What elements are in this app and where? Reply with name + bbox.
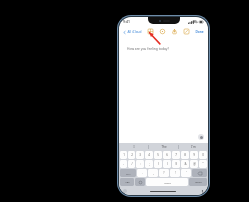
button[interactable]: ABC [120,178,134,186]
staticText: ! [175,171,176,175]
button[interactable]: ( [154,160,162,168]
button[interactable]: Table [147,28,154,35]
button[interactable]: All iCloud [122,29,143,35]
staticText: 7 [175,153,177,157]
staticText: The [161,145,167,149]
button[interactable]: . [137,169,147,177]
staticText: . [142,171,143,175]
staticText: 4 [148,153,150,157]
button[interactable]: " [199,160,207,168]
button[interactable]: 3 [136,151,144,159]
staticText: : [140,162,141,166]
button[interactable]: #+= [120,169,136,177]
staticText: 5 [157,153,159,157]
staticText: - [123,162,124,166]
staticText: ( [158,162,159,166]
staticText: @ [193,162,196,166]
staticText: 1 [123,153,125,157]
staticText: 8 [184,153,186,157]
staticText: I'm [191,145,196,149]
button[interactable]: Share [171,28,178,35]
button[interactable]: 1 [120,151,127,159]
staticText: 9:41 [123,19,130,24]
staticText: Done [195,30,204,34]
button[interactable]: 2 [128,151,135,159]
staticText: " [202,162,204,166]
button[interactable]: Format [159,28,166,35]
button[interactable]: $ [172,160,180,168]
button[interactable]: ) [163,160,171,168]
button[interactable]: Keyboard settings [123,189,127,193]
staticText: ABC [125,181,130,184]
button[interactable]: Backspace [192,169,207,177]
button[interactable]: 7 [172,151,180,159]
staticText: $ [175,162,177,166]
button[interactable]: Dictation [200,189,204,193]
button[interactable]: 6 [163,151,171,159]
button[interactable]: ? [159,169,169,177]
button[interactable]: Done [194,29,205,35]
button[interactable]: & [181,160,189,168]
staticText: 0 [202,153,204,157]
button[interactable]: I [119,143,148,150]
staticText: , [153,171,154,175]
button[interactable]: 0 [199,151,207,159]
staticText: 9 [193,153,195,157]
button[interactable]: : [136,160,144,168]
button[interactable]: The [149,143,178,150]
button[interactable]: 9 [190,151,198,159]
staticText: space [164,181,171,184]
button[interactable]: I'm [179,143,208,150]
staticText: / [131,162,133,166]
button[interactable]: ; [145,160,153,168]
button[interactable]: , [148,169,158,177]
staticText: ; [149,162,150,166]
staticText: I [133,145,135,149]
staticText: #+= [126,172,131,175]
button[interactable]: ' [181,169,191,177]
button[interactable]: More options [198,134,204,140]
staticText: return [195,181,202,184]
button[interactable]: / [128,160,135,168]
button[interactable]: - [120,160,127,168]
staticText: ) [167,162,168,166]
staticText: & [184,162,187,166]
button[interactable]: Compose [183,28,190,35]
button[interactable]: @ [190,160,198,168]
staticText: 2 [131,153,133,157]
staticText: 3 [139,153,141,157]
staticText: ? [163,171,165,175]
button[interactable]: Emoji [135,178,145,186]
staticText: 6 [166,153,168,157]
button[interactable]: 5 [154,151,162,159]
button[interactable]: ! [170,169,180,177]
button[interactable]: 4 [145,151,153,159]
staticText: How are you feeling today? [127,46,169,50]
button[interactable]: space [146,178,188,186]
staticText: ' [186,171,187,175]
button[interactable]: 8 [181,151,189,159]
staticText: All iCloud [127,30,142,34]
button[interactable]: return [189,178,207,186]
